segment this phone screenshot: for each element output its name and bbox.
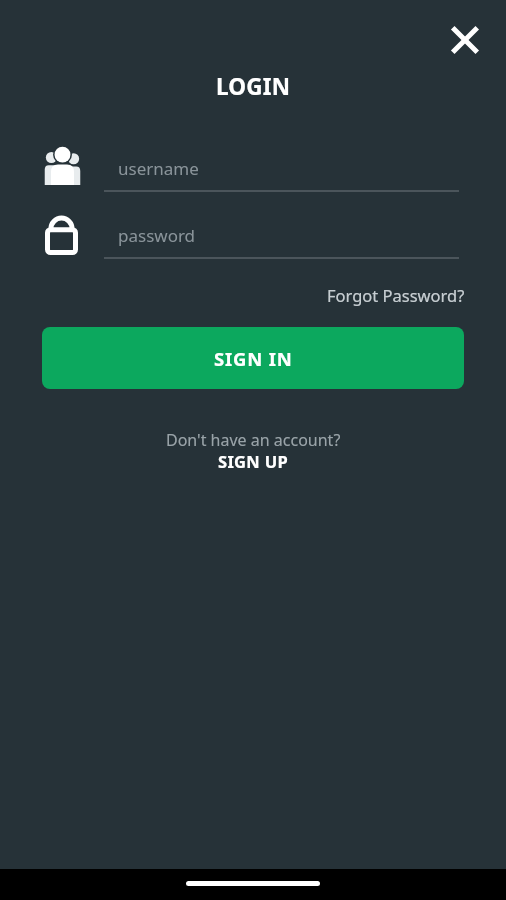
staticText: SIGN IN (214, 346, 293, 371)
button[interactable]: SIGN IN (42, 327, 464, 389)
staticText: Don't have an account? (166, 429, 341, 451)
button[interactable]: Forgot Password? (327, 284, 465, 306)
staticText: SIGN UP (218, 450, 288, 472)
staticText: LOGIN (216, 71, 291, 102)
button[interactable]: username (104, 146, 459, 192)
button[interactable]: password (104, 213, 459, 259)
staticText: password (118, 224, 196, 247)
staticText: Forgot Password? (327, 284, 465, 306)
button[interactable]: SIGN UP (218, 450, 288, 472)
staticText: username (118, 157, 199, 180)
button[interactable] (443, 18, 487, 62)
